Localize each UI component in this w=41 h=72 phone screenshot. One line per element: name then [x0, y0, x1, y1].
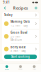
staticText: Morning Oats — [10, 20, 29, 23]
staticText: Green Bowl — [10, 31, 27, 34]
staticText: Today — [4, 13, 12, 17]
staticText: 20 min · Medium — [10, 35, 22, 42]
button[interactable]: Green Bowl — [2, 29, 39, 43]
button[interactable]: Morning Oats — [2, 18, 39, 29]
button[interactable]: Home — [0, 63, 14, 72]
button[interactable]: Start cooking — [4, 55, 37, 59]
button[interactable]: You — [27, 63, 41, 72]
staticText: Start cooking — [11, 55, 30, 58]
button[interactable]: Back — [2, 5, 8, 11]
staticText: You — [33, 68, 36, 70]
button[interactable]: Today — [2, 12, 39, 18]
staticText: Recipes — [13, 5, 28, 11]
staticText: Home — [5, 68, 9, 70]
button[interactable]: Cook — [14, 63, 27, 72]
staticText: 12 min · Easy — [10, 24, 27, 27]
staticText: Berry Toast — [10, 45, 25, 49]
staticText: Cook — [18, 68, 22, 70]
staticText: 8 min · Easy — [10, 49, 25, 53]
staticText: 9:41 — [3, 1, 10, 4]
button[interactable]: Berry Toast — [2, 44, 39, 54]
button[interactable]: Add — [33, 5, 39, 11]
